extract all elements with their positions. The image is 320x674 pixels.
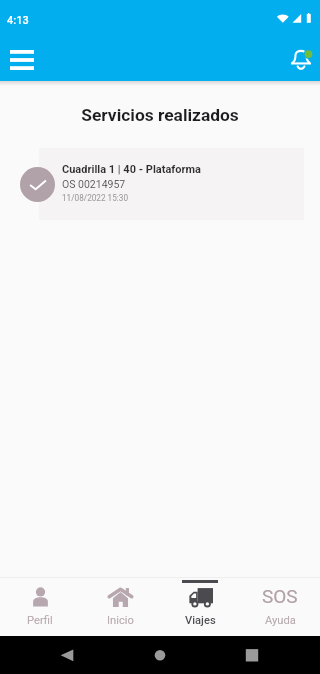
button[interactable]: SOS xyxy=(240,577,320,636)
button[interactable]: Viajes xyxy=(160,577,240,636)
staticText: SOS xyxy=(262,585,298,607)
button[interactable]: Open navigation menu xyxy=(2,43,42,75)
staticText: Viajes xyxy=(185,614,216,627)
button[interactable]: Perfil xyxy=(0,577,80,636)
staticText: Cuadrilla 1 | 40 - Plataforma xyxy=(62,163,201,176)
staticText: Perfil xyxy=(27,614,53,627)
button[interactable]: Notifications xyxy=(287,43,315,75)
staticText: Servicios realizados xyxy=(0,105,320,125)
staticText: 4:13 xyxy=(7,14,29,27)
button[interactable]: Recent apps xyxy=(233,636,271,674)
button[interactable] xyxy=(39,148,304,220)
button[interactable]: Inicio xyxy=(80,577,160,636)
button[interactable]: Home xyxy=(141,636,179,674)
button[interactable]: Back xyxy=(48,636,86,674)
staticText: OS 00214957 xyxy=(62,178,126,190)
staticText: Inicio xyxy=(107,614,134,627)
staticText: Ayuda xyxy=(265,614,296,627)
staticText: 11/08/2022 15:30 xyxy=(62,193,128,203)
